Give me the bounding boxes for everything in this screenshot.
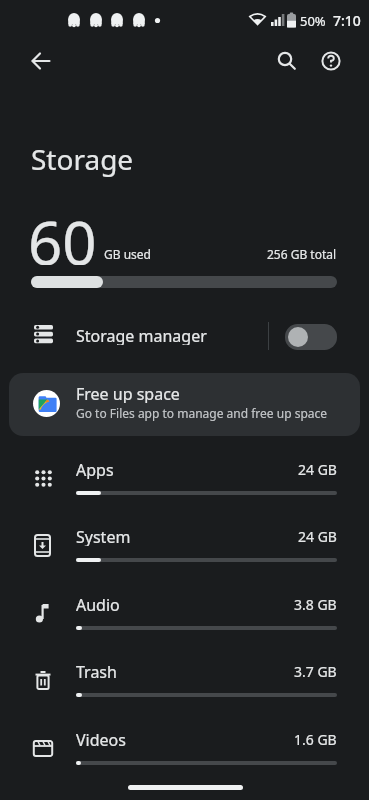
staticText: Storage manager — [76, 325, 207, 345]
button[interactable] — [285, 324, 337, 350]
button[interactable]: Trash — [0, 652, 369, 719]
staticText: 3.7 GB — [294, 662, 337, 681]
staticText: Audio — [76, 594, 120, 614]
button[interactable] — [17, 37, 65, 85]
staticText: 24 GB — [298, 527, 337, 546]
staticText: 50% — [300, 12, 326, 29]
button[interactable]: Audio — [0, 585, 369, 652]
button[interactable]: Videos — [0, 720, 369, 787]
staticText: 7:10 — [333, 11, 361, 29]
staticText: Apps — [76, 459, 114, 479]
button[interactable]: Storage manager — [0, 316, 369, 361]
staticText: GB used — [104, 246, 151, 262]
staticText: 1.6 GB — [294, 730, 337, 749]
staticText: 60 — [28, 201, 97, 265]
staticText: System — [76, 526, 131, 546]
staticText: 256 GB total — [267, 246, 337, 262]
button[interactable]: Free up space — [9, 373, 360, 436]
button[interactable] — [307, 37, 355, 85]
button[interactable]: System — [0, 517, 369, 584]
staticText: 3.8 GB — [294, 595, 337, 614]
button[interactable]: Apps — [0, 450, 369, 517]
staticText: Videos — [76, 729, 126, 749]
staticText: Trash — [76, 661, 117, 681]
button[interactable] — [263, 37, 311, 85]
staticText: Storage — [31, 140, 134, 178]
staticText: 24 GB — [298, 460, 337, 479]
staticText: Free up space — [76, 383, 180, 403]
staticText: Go to Files app to manage and free up sp… — [76, 405, 328, 421]
